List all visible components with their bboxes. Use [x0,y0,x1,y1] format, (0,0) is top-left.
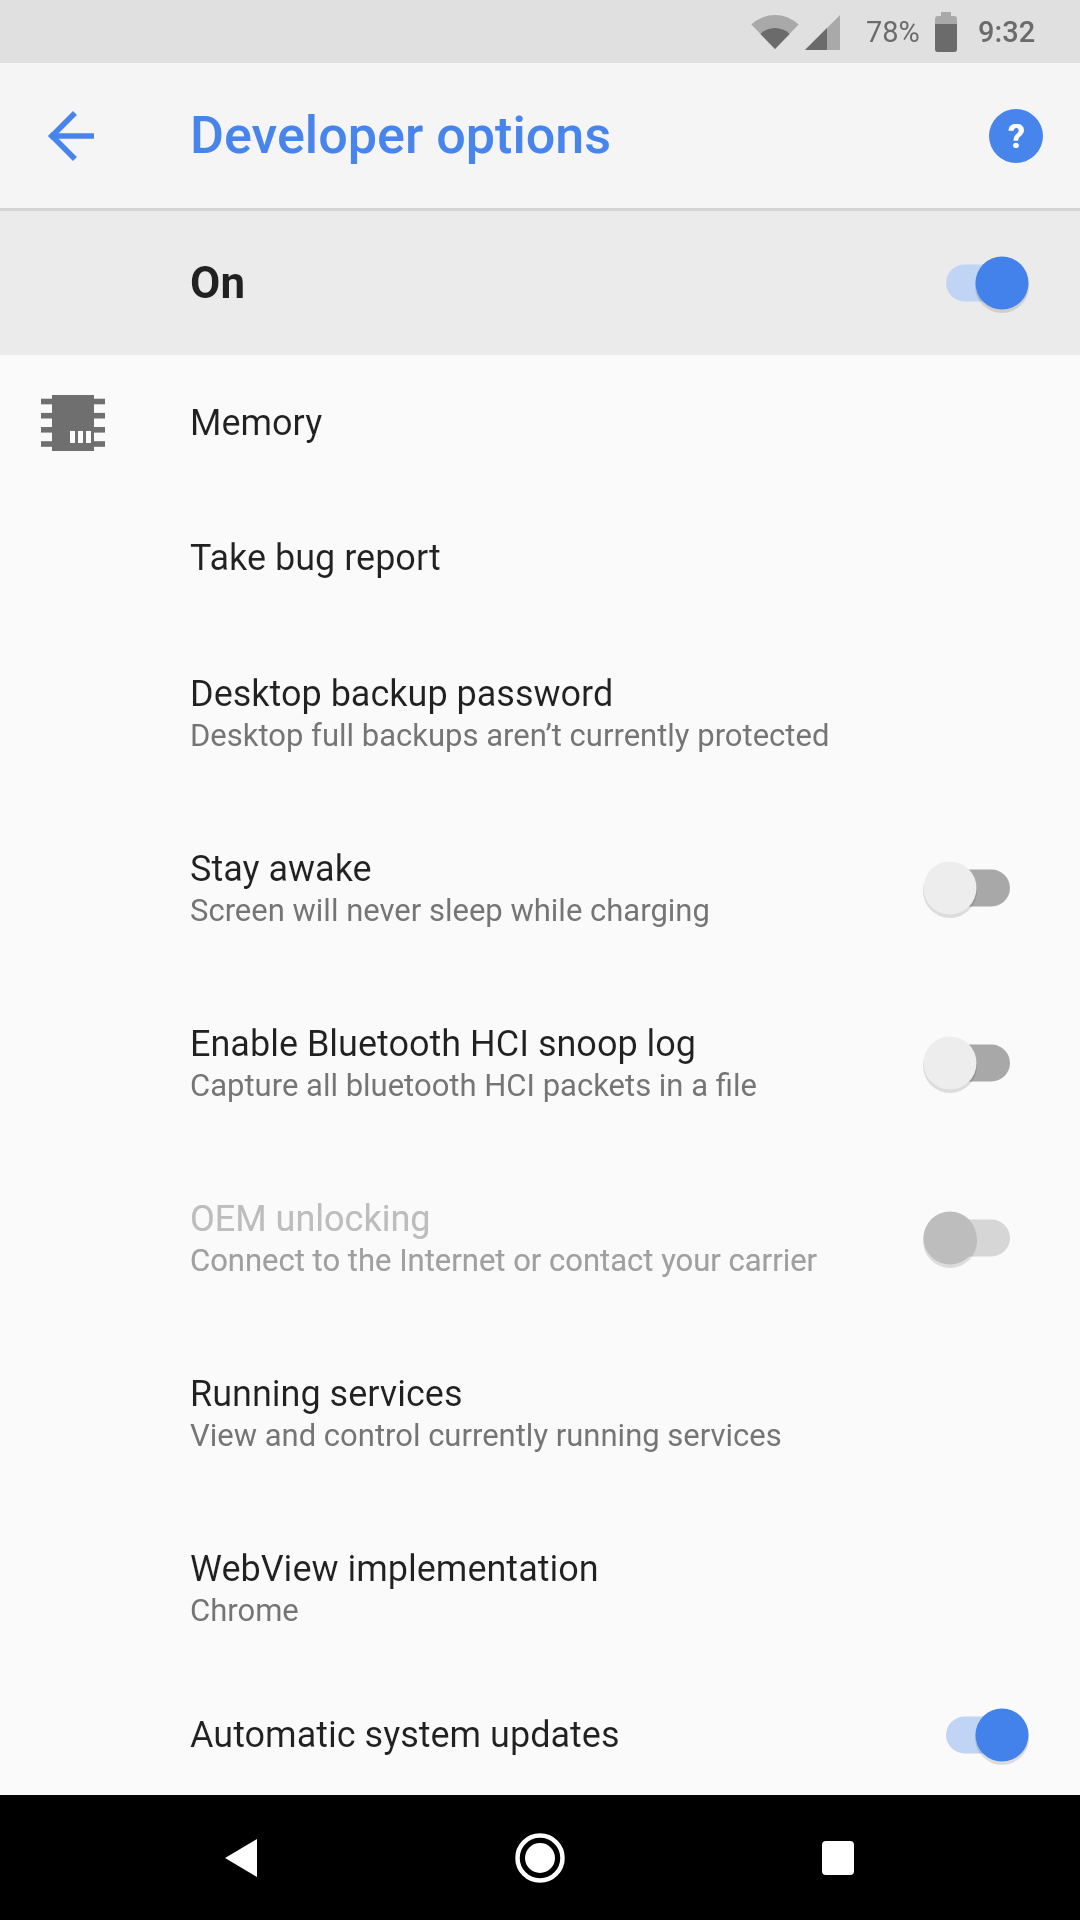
button[interactable] [210,1826,274,1890]
button[interactable]: ? [989,109,1043,163]
staticText: ? [1008,116,1025,156]
staticText: Desktop backup password [190,673,614,715]
button[interactable]: OEM unlocking [0,1150,1080,1325]
button[interactable]: Stay awake [0,800,1080,975]
staticText: Enable Bluetooth HCI snoop log [190,1023,697,1065]
staticText: Connect to the Internet or contact your … [190,1242,818,1278]
staticText: 78% [866,15,920,49]
button[interactable]: Desktop backup password [0,625,1080,800]
staticText: Running services [190,1373,463,1415]
staticText: Screen will never sleep while charging [190,892,710,928]
button[interactable]: Memory [0,355,1080,490]
staticText: On [190,257,920,309]
staticText: Automatic system updates [190,1714,620,1756]
staticText: Memory [190,402,323,444]
staticText: Desktop full backups aren’t currently pr… [190,717,830,753]
staticText: Chrome [190,1592,299,1628]
staticText: WebView implementation [190,1548,599,1590]
staticText: Stay awake [190,848,372,890]
button[interactable]: Automatic system updates [0,1675,1080,1795]
button[interactable] [508,1826,572,1890]
button[interactable]: Enable Bluetooth HCI snoop log [0,975,1080,1150]
button[interactable] [806,1826,870,1890]
button[interactable]: On [0,211,1080,355]
staticText: Take bug report [190,537,441,579]
button[interactable]: WebView implementation [0,1500,1080,1675]
button[interactable] [40,103,106,169]
staticText: 9:32 [978,15,1036,49]
staticText: View and control currently running servi… [190,1417,782,1453]
button[interactable]: Running services [0,1325,1080,1500]
staticText: OEM unlocking [190,1198,431,1240]
staticText: Capture all bluetooth HCI packets in a f… [190,1067,757,1103]
staticText: Developer options [190,105,612,166]
button[interactable]: Take bug report [0,490,1080,625]
